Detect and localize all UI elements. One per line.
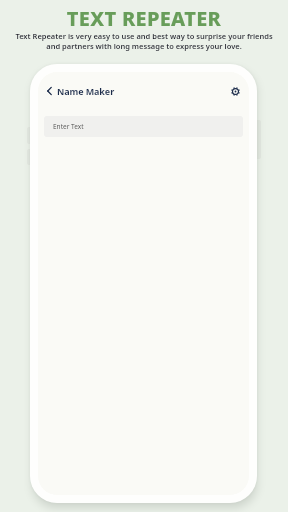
staticText: Name Maker <box>57 85 115 97</box>
button[interactable] <box>227 83 243 99</box>
staticText: Enter Text <box>53 122 84 131</box>
staticText: TEXT REPEATER <box>0 5 288 32</box>
button[interactable]: Enter Text <box>44 116 243 137</box>
staticText: Text Repeater is very easy to use and be… <box>0 31 288 51</box>
button[interactable] <box>44 84 54 98</box>
